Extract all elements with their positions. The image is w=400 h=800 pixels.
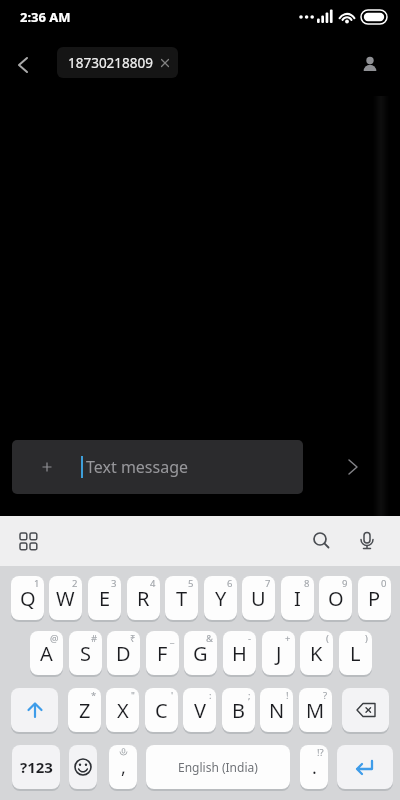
staticText: V	[194, 697, 206, 724]
button[interactable]: H	[223, 631, 256, 675]
staticText: D	[116, 640, 131, 667]
staticText: C	[155, 697, 168, 724]
staticText: ;	[248, 689, 251, 702]
staticText: O	[328, 585, 344, 612]
button[interactable]: Y	[204, 576, 237, 620]
staticText: &	[206, 632, 213, 645]
button[interactable]: V	[183, 688, 216, 732]
button[interactable]: Q	[11, 576, 44, 620]
button[interactable]	[344, 458, 362, 476]
staticText: H	[232, 640, 247, 667]
staticText: K	[310, 640, 323, 667]
staticText: !	[286, 689, 289, 702]
staticText: ?123	[20, 757, 53, 777]
staticText: B	[232, 697, 245, 724]
staticText: Text message	[86, 456, 189, 478]
button[interactable]: English (India)	[146, 745, 290, 789]
button[interactable]	[356, 530, 378, 552]
button[interactable]: J	[262, 631, 295, 675]
staticText: P	[368, 585, 381, 612]
button[interactable]: I	[281, 576, 314, 620]
button[interactable]: Text message	[12, 440, 303, 494]
button[interactable]	[11, 688, 58, 732]
staticText: J	[276, 640, 282, 667]
button[interactable]: D	[107, 631, 140, 675]
staticText: 1	[34, 577, 40, 590]
staticText: ₹	[130, 632, 136, 645]
button[interactable]: Z	[68, 688, 101, 732]
staticText: ?	[323, 689, 328, 702]
staticText: 3	[111, 577, 117, 590]
staticText: :	[209, 689, 212, 702]
staticText: ,	[121, 755, 126, 780]
button[interactable]: B	[222, 688, 255, 732]
staticText: '	[171, 689, 174, 702]
staticText: R	[137, 585, 150, 612]
button[interactable]	[356, 51, 384, 79]
button[interactable]	[342, 688, 389, 732]
button[interactable]	[311, 530, 333, 552]
button[interactable]	[10, 51, 38, 79]
staticText: T	[176, 585, 188, 612]
staticText: Q	[20, 585, 36, 612]
staticText: 18730218809	[68, 54, 153, 72]
staticText: 9	[342, 577, 348, 590]
staticText: #	[91, 632, 98, 645]
button[interactable]: K	[300, 631, 333, 675]
button[interactable]: A	[30, 631, 63, 675]
button[interactable]: E	[88, 576, 121, 620]
button[interactable]: P	[358, 576, 391, 620]
button[interactable]: ,	[109, 745, 137, 789]
staticText: 2	[72, 577, 78, 590]
button[interactable]: ?123	[12, 745, 60, 789]
button[interactable]: L	[339, 631, 372, 675]
staticText: U	[251, 585, 266, 612]
staticText: A	[40, 640, 53, 667]
staticText: L	[350, 640, 361, 667]
button[interactable]: S	[69, 631, 102, 675]
staticText: S	[80, 640, 91, 667]
button[interactable]: T	[165, 576, 198, 620]
staticText: @	[50, 632, 59, 645]
staticText: 5	[188, 577, 194, 590]
button[interactable]: F	[146, 631, 179, 675]
staticText: -	[248, 632, 252, 645]
button[interactable]: R	[127, 576, 160, 620]
staticText: 7	[265, 577, 271, 590]
staticText: W	[56, 585, 75, 612]
button[interactable]: X	[106, 688, 139, 732]
staticText: E	[99, 585, 111, 612]
staticText: *	[91, 689, 97, 702]
staticText: F	[157, 640, 168, 667]
button[interactable]: N	[260, 688, 293, 732]
staticText: +	[285, 632, 291, 645]
staticText: 4	[150, 577, 156, 590]
staticText: 8	[304, 577, 310, 590]
button[interactable]: U	[242, 576, 275, 620]
staticText: M	[306, 697, 325, 724]
staticText: English (India)	[178, 759, 258, 775]
staticText: "	[131, 689, 135, 702]
button[interactable]: 18730218809	[57, 47, 178, 78]
button[interactable]: W	[49, 576, 82, 620]
staticText: 2:36 AM	[20, 8, 71, 26]
button[interactable]: M	[299, 688, 332, 732]
staticText: X	[117, 697, 129, 724]
staticText: )	[365, 632, 368, 645]
staticText: 6	[227, 577, 233, 590]
button[interactable]	[19, 532, 37, 550]
staticText: !?	[317, 746, 324, 759]
staticText: 0	[381, 577, 387, 590]
button[interactable]: O	[319, 576, 352, 620]
staticText: .	[312, 755, 317, 780]
staticText: N	[269, 697, 285, 724]
staticText: (	[326, 632, 329, 645]
button[interactable]: G	[184, 631, 217, 675]
staticText: Z	[79, 697, 91, 724]
button[interactable]	[337, 745, 393, 789]
staticText: G	[193, 640, 208, 667]
button[interactable]: .	[300, 745, 328, 789]
button[interactable]: C	[145, 688, 178, 732]
staticText: Y	[215, 585, 227, 612]
button[interactable]	[69, 745, 97, 789]
